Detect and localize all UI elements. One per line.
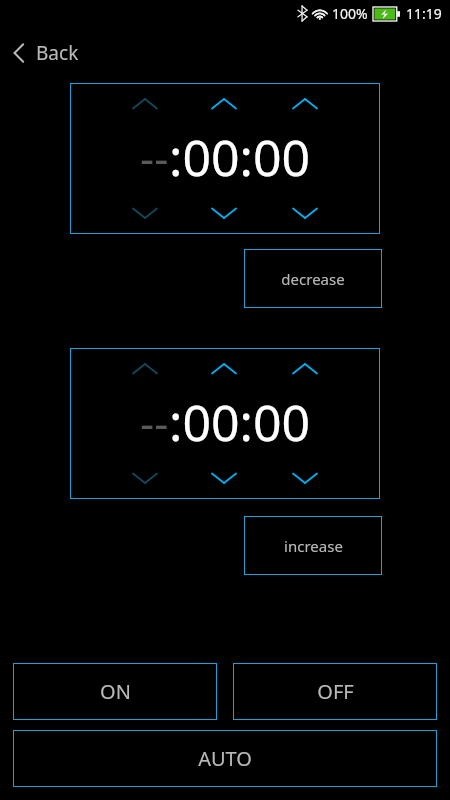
button[interactable]: decrease: [244, 249, 382, 308]
button[interactable]: Increase minutes: [204, 89, 244, 119]
staticText: increase: [284, 536, 343, 556]
staticText: AUTO: [198, 745, 252, 772]
button[interactable]: Decrease hours: [125, 198, 165, 228]
staticText: --: [140, 127, 169, 187]
button[interactable]: Increase hours: [70, 348, 380, 499]
button[interactable]: AUTO: [13, 730, 437, 787]
staticText: 100%: [332, 4, 368, 23]
staticText: decrease: [281, 269, 345, 289]
button[interactable]: Decrease minutes: [204, 198, 244, 228]
button[interactable]: increase: [244, 516, 382, 575]
staticText: ON: [100, 678, 131, 705]
button[interactable]: Back: [0, 36, 95, 70]
button[interactable]: Increase seconds: [285, 89, 325, 119]
button[interactable]: Decrease seconds: [285, 463, 325, 493]
staticText: :00:00: [169, 388, 311, 456]
button[interactable]: Increase minutes: [204, 354, 244, 384]
button[interactable]: Decrease minutes: [204, 463, 244, 493]
button[interactable]: Increase hours: [70, 83, 380, 234]
button[interactable]: ON: [13, 663, 217, 720]
button[interactable]: Decrease hours: [125, 463, 165, 493]
staticText: 11:19: [406, 4, 442, 23]
staticText: Back: [36, 40, 79, 66]
button[interactable]: OFF: [233, 663, 437, 720]
button[interactable]: Increase hours: [125, 354, 165, 384]
staticText: :00:00: [169, 123, 311, 191]
staticText: --: [140, 392, 169, 452]
button[interactable]: Increase seconds: [285, 354, 325, 384]
button[interactable]: Increase hours: [125, 89, 165, 119]
button[interactable]: Decrease seconds: [285, 198, 325, 228]
staticText: OFF: [317, 678, 354, 705]
